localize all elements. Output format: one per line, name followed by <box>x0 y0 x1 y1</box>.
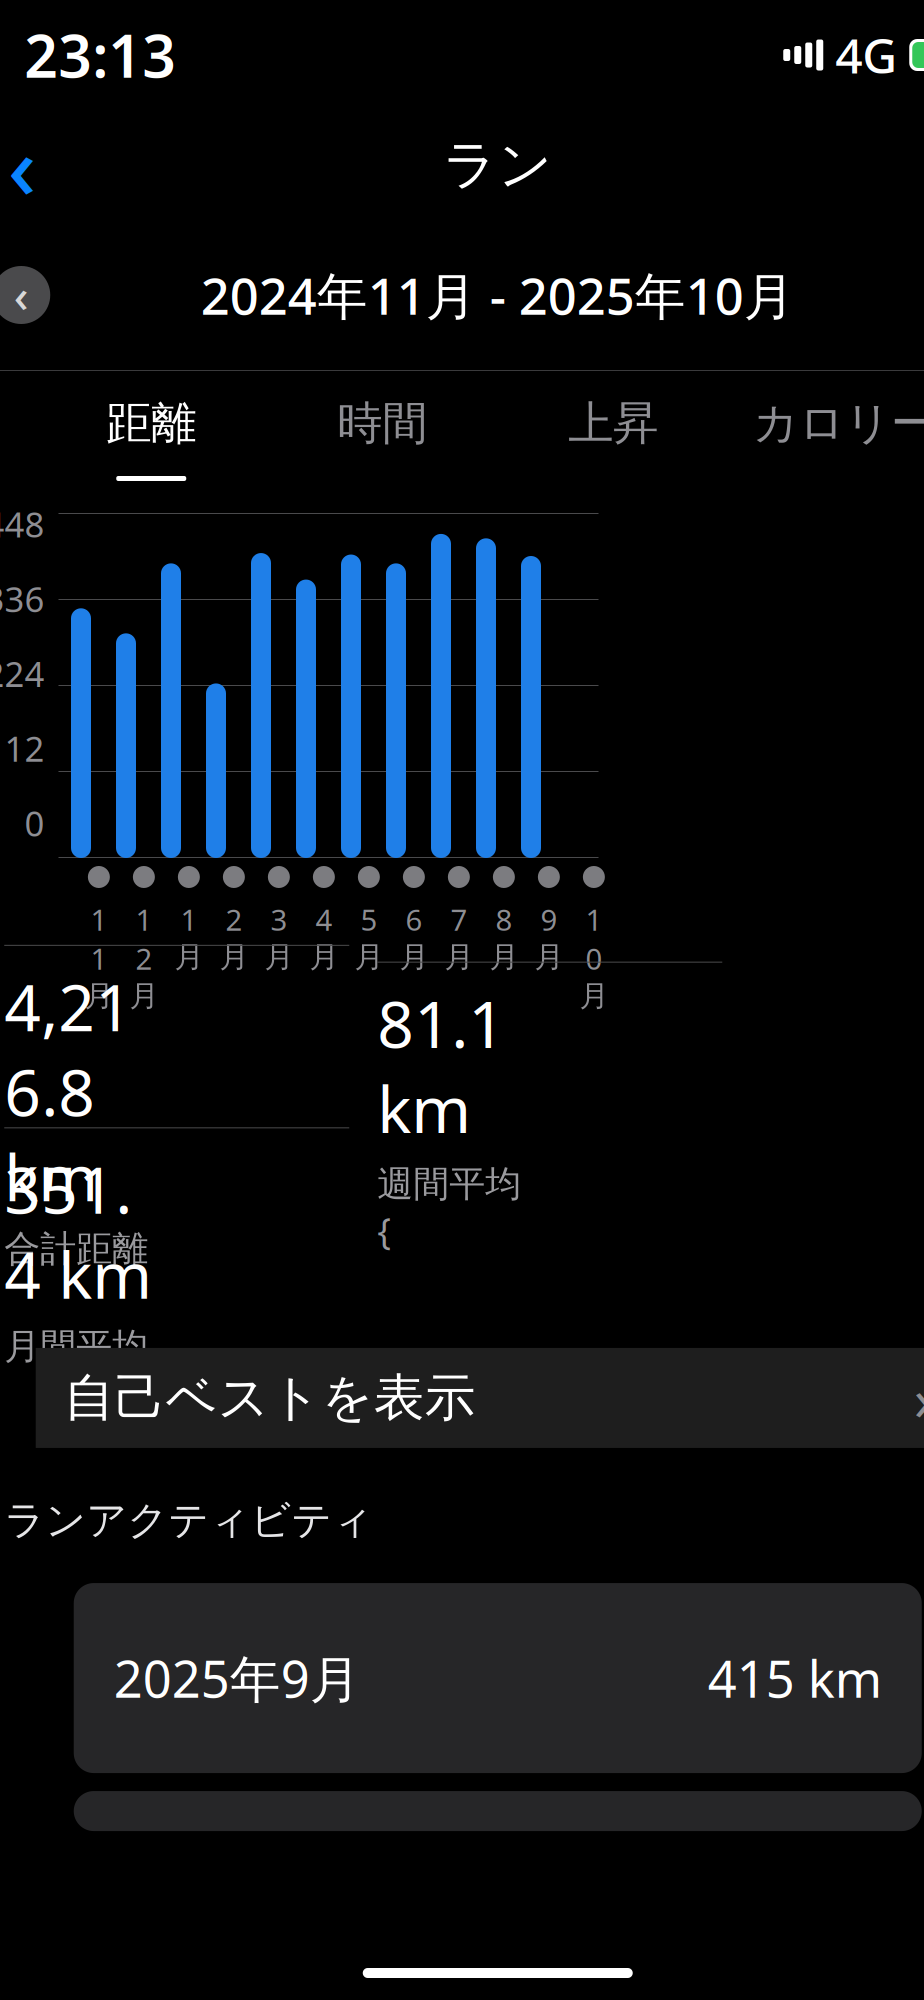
staticText: ‹ <box>8 107 37 223</box>
staticText: 距離 <box>106 396 196 451</box>
staticText: 7 <box>450 900 467 939</box>
staticText: 時間 <box>337 396 427 451</box>
staticText: 月 <box>354 939 383 975</box>
staticText: 1 <box>135 900 152 939</box>
staticText: 415 km <box>708 1644 882 1712</box>
staticText: 0 <box>24 800 44 846</box>
staticText: 3 <box>270 900 287 939</box>
staticText: 0 <box>585 939 602 978</box>
staticText: 月 <box>309 939 338 975</box>
staticText: 351.4 km <box>4 1146 152 1316</box>
staticText: 月 <box>399 939 428 975</box>
staticText: 9 <box>540 900 557 939</box>
staticText: 4,216.8 km <box>4 964 132 1219</box>
button[interactable]: 自己ベストを表示 <box>36 1348 924 1448</box>
button[interactable]: 戻る <box>0 125 62 205</box>
staticText: 自己ベストを表示 <box>64 1367 476 1429</box>
button[interactable]: カロリー <box>729 371 924 481</box>
staticText: 1 <box>90 900 107 939</box>
staticText: 5 <box>360 900 377 939</box>
staticText: 合計距離 <box>4 1227 148 1271</box>
staticText: 1 <box>180 900 197 939</box>
staticText: 224 <box>0 650 44 696</box>
staticText: 月 <box>84 978 113 1014</box>
staticText: ランアクティビティ <box>4 1496 373 1545</box>
staticText: 月間平均 <box>4 1324 148 1368</box>
staticText: 月 <box>219 939 248 975</box>
staticText: 23:13 <box>24 16 176 94</box>
staticText: 月 <box>174 939 203 975</box>
staticText: 81.1 km <box>377 981 505 1151</box>
staticText: 上昇 <box>568 396 658 451</box>
staticText: 2025年9月 <box>114 1644 361 1712</box>
button[interactable]: 上昇 <box>498 371 729 481</box>
staticText: 8 <box>495 900 512 939</box>
staticText: 2 <box>225 900 242 939</box>
staticText: 月 <box>264 939 293 975</box>
staticText: 6 <box>405 900 422 939</box>
staticText: 336 <box>0 576 44 622</box>
staticText: ‹ <box>14 265 29 325</box>
button[interactable]: 2025年9月 <box>74 1583 922 1773</box>
button[interactable]: 前の期間 <box>0 266 50 324</box>
button[interactable]: 距離 <box>36 371 267 481</box>
staticText: 月 <box>534 939 563 975</box>
staticText: 448 <box>0 501 44 547</box>
staticText: 4 <box>315 900 332 939</box>
staticText: カロリー <box>753 396 924 451</box>
staticText: 2024年11月 - 2025年10月 <box>201 261 795 329</box>
staticText: 2 <box>135 939 152 978</box>
staticText: › <box>914 1359 924 1437</box>
staticText: 週間平均 { <box>377 1159 521 1254</box>
staticText: ⚡ <box>922 38 924 72</box>
staticText: 月 <box>129 978 158 1014</box>
staticText: 1 <box>585 900 602 939</box>
staticText: 112 <box>0 725 44 771</box>
staticText: 月 <box>444 939 473 975</box>
button[interactable]: 時間 <box>267 371 498 481</box>
staticText: 月 <box>579 978 608 1014</box>
staticText: 月 <box>489 939 518 975</box>
staticText: 1 <box>90 939 107 978</box>
staticText: ラン <box>443 132 553 198</box>
staticText: 4G <box>835 23 897 87</box>
